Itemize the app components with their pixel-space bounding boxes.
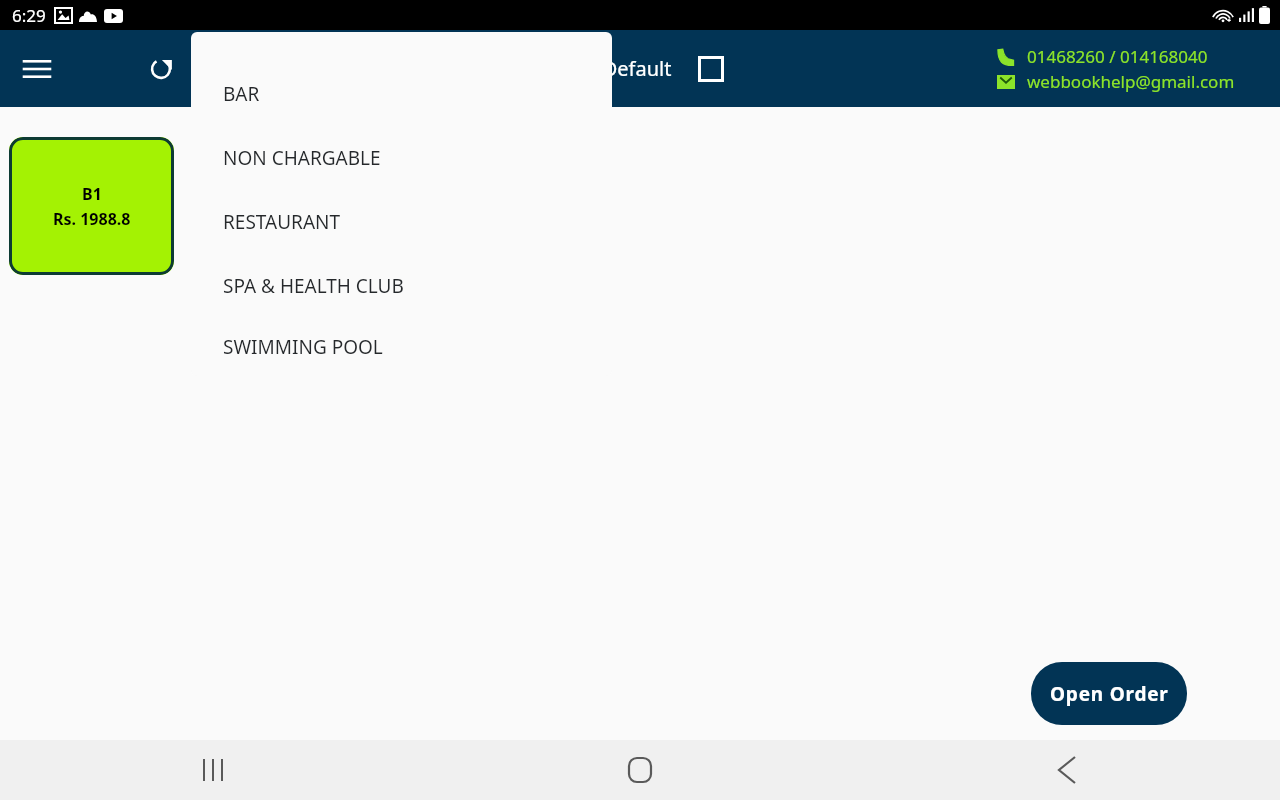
button[interactable]: 01468260 / 014168040 [997, 45, 1235, 93]
staticText: Rs. 1988.8 [53, 208, 131, 230]
button[interactable]: Refresh [138, 46, 184, 92]
staticText: webbookhelp@gmail.com [1027, 70, 1235, 93]
staticText: 01468260 / 014168040 [1027, 45, 1208, 68]
staticText: RESTAURANT [223, 209, 341, 235]
button[interactable]: BAR [191, 62, 612, 126]
button[interactable]: Back [853, 740, 1280, 800]
staticText: BAR [223, 81, 260, 107]
button[interactable]: SPA & HEALTH CLUB [191, 254, 612, 318]
button[interactable]: RESTAURANT [191, 190, 612, 254]
button[interactable]: Home [426, 740, 853, 800]
button[interactable]: Recents [0, 740, 426, 800]
staticText: 6:29 [12, 4, 46, 27]
button[interactable]: Set Default [560, 49, 732, 88]
staticText: SWIMMING POOL [223, 334, 383, 360]
button[interactable]: B1 [9, 137, 174, 275]
button[interactable]: Open Order [1031, 662, 1187, 725]
button[interactable]: Menu [14, 46, 60, 92]
button[interactable]: SWIMMING POOL [191, 318, 612, 376]
staticText: NON CHARGABLE [223, 145, 381, 171]
staticText: SPA & HEALTH CLUB [223, 273, 404, 299]
staticText: B1 [82, 183, 102, 205]
button[interactable]: NON CHARGABLE [191, 126, 612, 190]
staticText: Set Default [568, 55, 672, 82]
staticText: Open Order [1050, 681, 1169, 707]
